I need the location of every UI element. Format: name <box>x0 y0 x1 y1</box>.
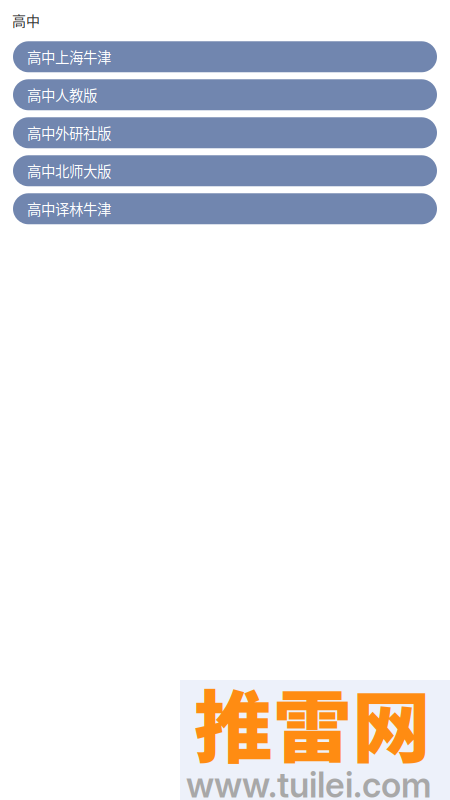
staticText: 高中上海牛津 <box>27 46 111 67</box>
staticText: 高中译林牛津 <box>27 198 111 219</box>
button[interactable]: 高中外研社版 <box>13 117 437 148</box>
button[interactable]: 高中北师大版 <box>13 155 437 186</box>
staticText: 推雷网 <box>194 665 431 779</box>
staticText: 高中 <box>12 10 40 30</box>
button[interactable]: 高中译林牛津 <box>13 193 437 224</box>
button[interactable]: 高中上海牛津 <box>13 41 437 72</box>
staticText: www.tuilei.com <box>186 764 431 800</box>
staticText: 高中人教版 <box>27 84 97 105</box>
button[interactable]: 高中人教版 <box>13 79 437 110</box>
staticText: 高中北师大版 <box>27 160 111 181</box>
staticText: 高中外研社版 <box>27 122 111 143</box>
